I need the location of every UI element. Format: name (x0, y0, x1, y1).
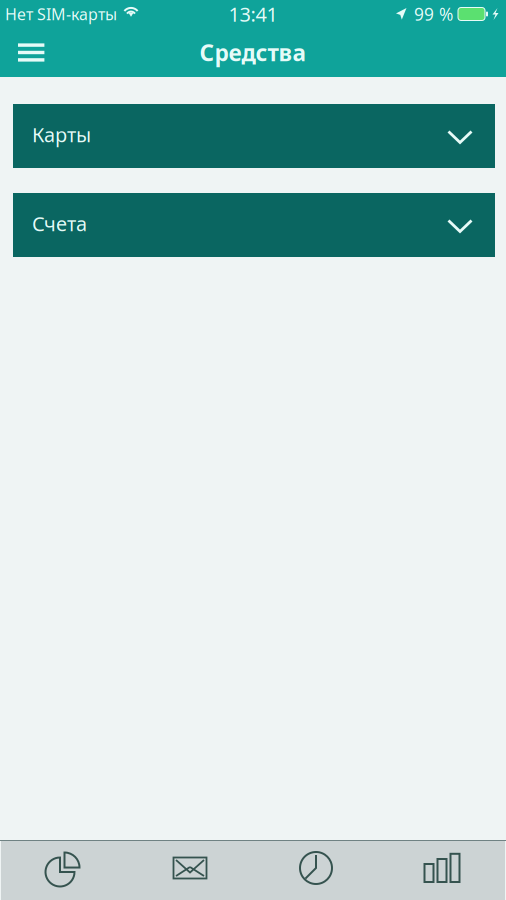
staticText: Карты (32, 121, 91, 148)
button[interactable]: Messages (127, 841, 253, 900)
button[interactable]: History (253, 841, 379, 900)
button[interactable]: Overview (1, 841, 127, 900)
staticText: Средства (199, 37, 306, 67)
staticText: Счета (32, 210, 87, 237)
staticText: Нет SIM-карты (5, 3, 117, 25)
staticText: 99 % (414, 2, 453, 25)
button[interactable]: Счета (13, 193, 495, 257)
button[interactable]: Карты (13, 104, 495, 168)
button[interactable]: Menu (0, 28, 62, 77)
staticText: 13:41 (228, 1, 277, 27)
button[interactable]: Statistics (379, 841, 505, 900)
